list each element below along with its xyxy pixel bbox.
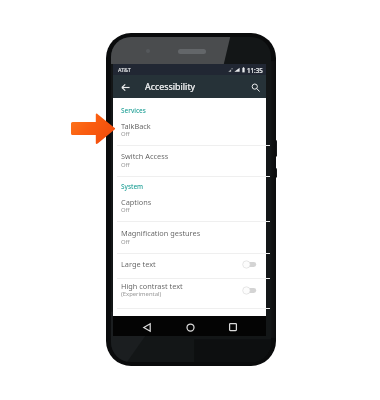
button[interactable]: Search: [247, 79, 263, 95]
staticText: Off: [121, 206, 130, 214]
staticText: Magnification gestures: [121, 228, 201, 238]
button[interactable]: Large text: [113, 254, 266, 278]
staticText: System: [121, 182, 144, 191]
staticText: Services: [121, 106, 146, 115]
button[interactable]: Back: [136, 317, 158, 337]
button[interactable]: High contrast text: [113, 279, 266, 308]
staticText: Off: [121, 238, 130, 246]
button[interactable]: Home: [179, 317, 201, 337]
staticText: Large text: [121, 259, 156, 269]
staticText: Switch Access: [121, 151, 169, 161]
button[interactable]: TalkBack: [113, 115, 266, 145]
staticText: AT&T: [118, 66, 131, 73]
staticText: High contrast text: [121, 281, 183, 291]
button[interactable]: Captions: [113, 191, 266, 221]
staticText: 11:35: [247, 66, 263, 74]
staticText: Captions: [121, 197, 152, 207]
button[interactable]: Navigate up: [117, 79, 133, 95]
button[interactable]: Switch Access: [113, 146, 266, 176]
staticText: Accessibility: [145, 80, 196, 92]
staticText: Off: [121, 161, 130, 169]
staticText: Off: [121, 130, 130, 138]
staticText: (Experimental): [121, 290, 162, 298]
button[interactable]: Recent apps: [222, 317, 244, 337]
button[interactable]: Magnification gestures: [113, 222, 266, 253]
staticText: TalkBack: [121, 121, 151, 131]
